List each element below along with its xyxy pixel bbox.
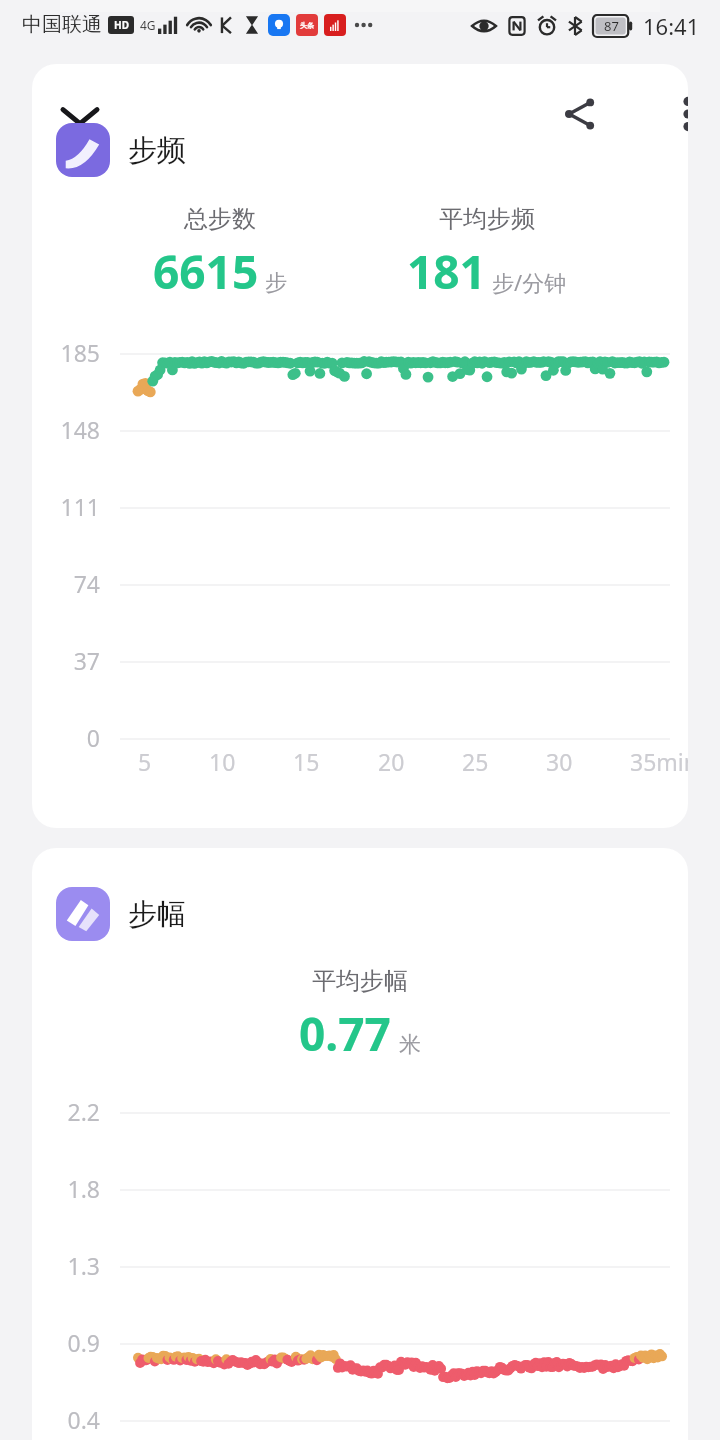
button[interactable]: Share (544, 78, 616, 150)
button[interactable]: Collapse (42, 78, 118, 154)
staticText: 25 (462, 746, 489, 777)
staticText: 1.3 (67, 1250, 100, 1281)
staticText: 1.8 (67, 1173, 100, 1204)
staticText: 37 (73, 645, 100, 676)
staticText: 0.77 (299, 1002, 391, 1065)
staticText: 181 (407, 240, 486, 303)
button[interactable]: More options (652, 78, 688, 150)
staticText: 头条 (300, 21, 314, 30)
staticText: 步 (265, 269, 287, 297)
staticText: 步/分钟 (492, 267, 567, 297)
staticText: 15 (293, 746, 320, 777)
staticText: 148 (60, 414, 100, 445)
staticText: 35min (630, 746, 688, 777)
staticText: 米 (399, 1031, 421, 1059)
staticText: 16:41 (643, 11, 700, 41)
staticText: 4G (140, 17, 156, 33)
staticText: 74 (73, 568, 100, 599)
staticText: 平均步频 (439, 204, 535, 234)
staticText: 0 (86, 722, 100, 753)
staticText: 5 (138, 746, 152, 777)
staticText: 10 (209, 746, 236, 777)
staticText: 111 (60, 491, 100, 522)
staticText: 6615 (153, 240, 259, 303)
staticText: 87 (604, 17, 619, 35)
button[interactable]: 步幅 (56, 882, 186, 946)
staticText: 0.9 (67, 1327, 100, 1358)
staticText: 步频 (128, 132, 186, 169)
staticText: 中国联通 (22, 12, 102, 37)
staticText: 185 (60, 337, 100, 368)
staticText: 2.2 (67, 1096, 100, 1127)
staticText: 30 (546, 746, 573, 777)
staticText: HD (114, 18, 129, 32)
staticText: 0.4 (67, 1404, 100, 1435)
staticText: 步幅 (128, 896, 186, 933)
button[interactable]: 步频 (56, 118, 186, 182)
staticText: 20 (378, 746, 405, 777)
staticText: 平均步幅 (312, 966, 408, 996)
staticText: 总步数 (184, 204, 256, 234)
